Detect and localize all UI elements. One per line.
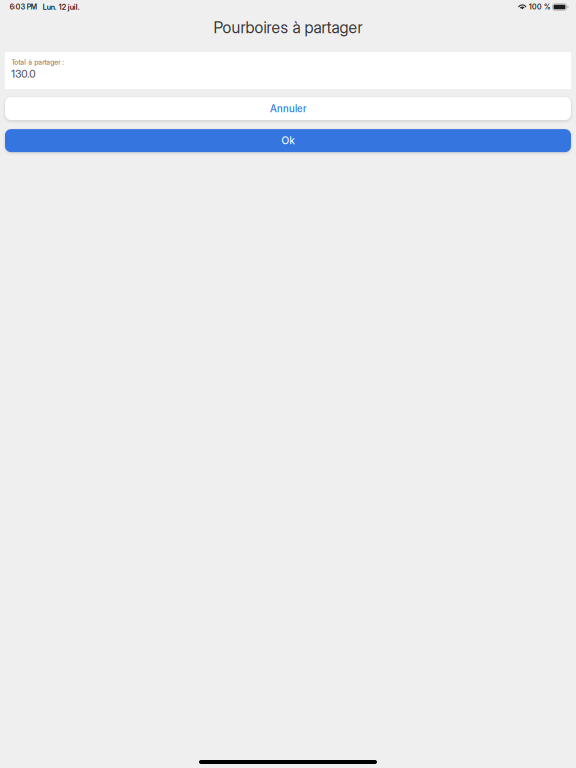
staticText: Lun. 12 juil. <box>43 2 80 11</box>
staticText: Ok <box>281 134 294 147</box>
staticText: 6:03 PM <box>10 3 37 11</box>
button[interactable]: Ok <box>5 129 571 152</box>
button[interactable]: Annuler <box>5 97 571 120</box>
staticText: 100 % <box>529 3 550 11</box>
staticText: Total à partager : <box>11 58 64 66</box>
staticText: 130.0 <box>11 68 35 80</box>
staticText: Annuler <box>270 102 306 115</box>
staticText: Pourboires à partager <box>213 18 362 37</box>
